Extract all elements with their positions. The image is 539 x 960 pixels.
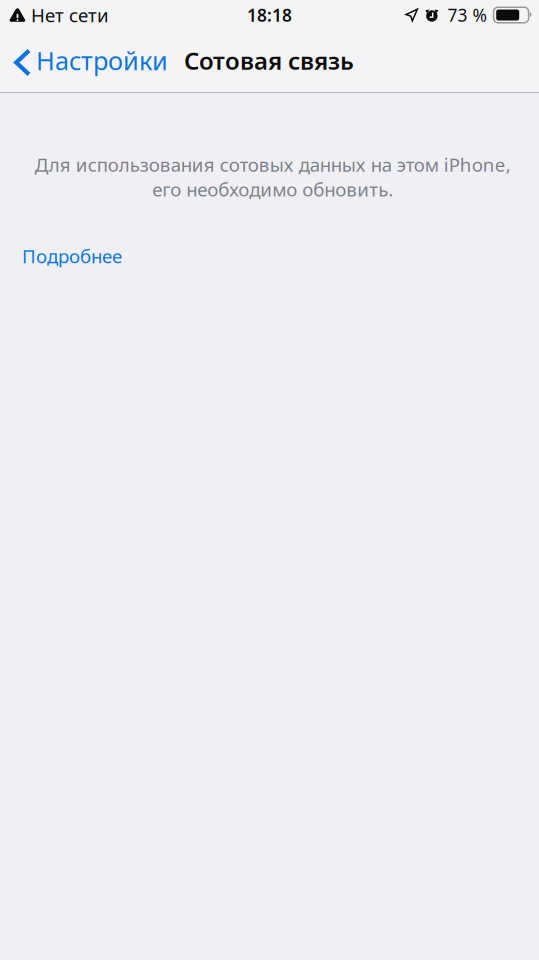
staticText: Подробнее [22,244,122,268]
button[interactable]: Настройки [0,32,174,89]
staticText: Настройки [36,44,168,77]
button[interactable]: Подробнее [0,238,138,276]
staticText: 73 % [448,3,487,26]
staticText: Сотовая связь [184,45,354,76]
staticText: 18:18 [247,3,292,26]
staticText: Нет сети [31,3,109,27]
staticText: Для использования сотовых данных на этом… [34,152,510,202]
